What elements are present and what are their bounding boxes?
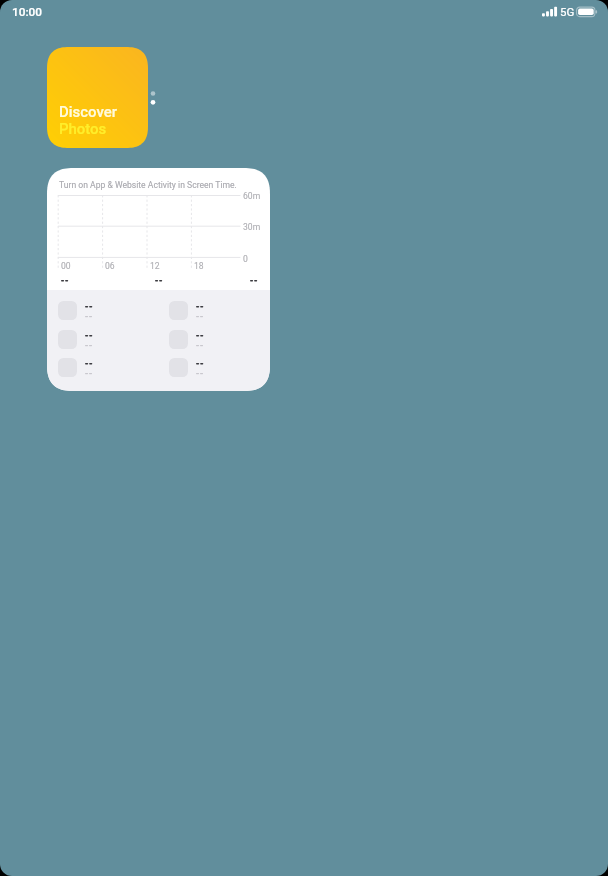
- button[interactable]: Discover: [47, 47, 148, 148]
- staticText: 06: [105, 261, 115, 271]
- other: Battery full: [575, 5, 600, 18]
- staticText: 18: [194, 261, 204, 271]
- staticText: Turn on App & Website Activity in Screen…: [59, 180, 237, 190]
- staticText: 5G: [560, 5, 575, 18]
- staticText: 00: [61, 261, 71, 271]
- other: Cellular signal: [542, 5, 558, 18]
- staticText: Photos: [59, 120, 107, 137]
- staticText: 12: [150, 261, 160, 271]
- staticText: 30m: [243, 222, 261, 232]
- staticText: 60m: [243, 191, 261, 201]
- button[interactable]: Turn on App & Website Activity in Screen…: [47, 168, 270, 391]
- staticText: Discover: [59, 103, 117, 120]
- staticText: 0: [243, 254, 248, 264]
- staticText: 10:00: [12, 5, 42, 19]
